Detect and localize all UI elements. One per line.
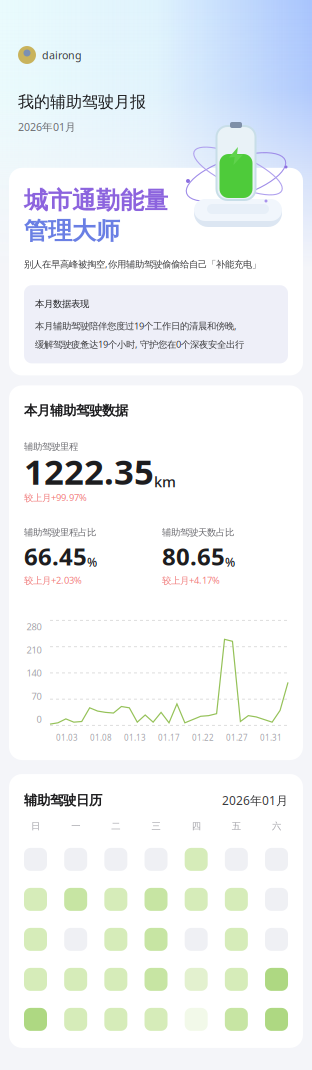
staticText: 01.31 (260, 732, 282, 743)
staticText: 本月数据表现 (35, 298, 89, 310)
staticText: 01.03 (56, 732, 78, 743)
staticText: 较上月+2.03% (24, 574, 82, 586)
staticText: dairong (42, 48, 82, 62)
staticText: % (225, 554, 235, 570)
staticText: 较上月+99.97% (24, 491, 87, 504)
staticText: 280 (26, 620, 41, 633)
staticText: 辅助驾驶天数占比 (162, 527, 234, 538)
staticText: km (154, 472, 176, 491)
staticText: 2026年01月 (18, 120, 76, 134)
staticText: 1222.35 (24, 448, 154, 494)
staticText: 0 (36, 713, 41, 725)
staticText: 二 (111, 820, 120, 832)
staticText: 城市通勤能量 (24, 186, 168, 215)
staticText: 01.27 (226, 732, 248, 743)
staticText: % (87, 554, 97, 570)
staticText: 一 (71, 820, 80, 832)
staticText: 01.22 (192, 732, 214, 743)
staticText: 本月辅助驾驶数据 (24, 402, 128, 419)
staticText: 四 (192, 820, 201, 832)
staticText: 缓解驾驶疲惫达19个小时, 守护您在0个深夜安全出行 (35, 338, 244, 350)
staticText: 辅助驾驶里程 (24, 441, 78, 452)
staticText: 2026年01月 (222, 792, 288, 808)
staticText: 01.13 (124, 732, 146, 743)
staticText: 本月辅助驾驶陪伴您度过19个工作日的清晨和傍晚, (35, 320, 237, 332)
staticText: 三 (151, 820, 160, 832)
staticText: 66.45 (24, 540, 87, 572)
staticText: 别人在早高峰被掏空,你用辅助驾驶偷偷给自己「补能充电」 (24, 258, 261, 270)
staticText: 辅助驾驶里程占比 (24, 527, 96, 538)
staticText: 较上月+4.17% (162, 574, 220, 586)
staticText: 210 (26, 644, 41, 656)
staticText: 80.65 (162, 540, 225, 572)
staticText: 日 (31, 820, 40, 832)
staticText: 六 (272, 820, 281, 832)
staticText: 01.08 (90, 732, 112, 743)
staticText: 70 (31, 690, 41, 702)
staticText: 辅助驾驶日历 (24, 792, 102, 808)
staticText: 五 (232, 820, 241, 832)
staticText: 管理大师 (24, 216, 120, 246)
staticText: 140 (26, 667, 41, 679)
staticText: 我的辅助驾驶月报 (18, 92, 146, 112)
staticText: 01.17 (158, 732, 180, 743)
